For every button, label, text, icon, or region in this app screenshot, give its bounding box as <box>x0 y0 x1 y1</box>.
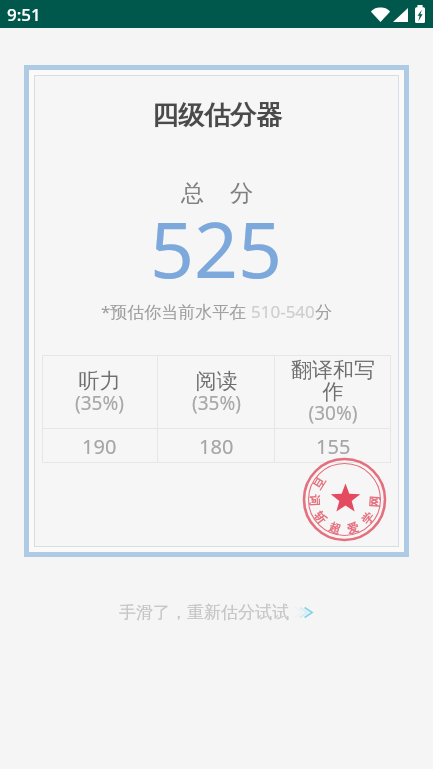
staticText: 分 <box>315 302 332 323</box>
staticText: 180 <box>199 433 234 460</box>
staticText: *预估你当前水平在 <box>101 300 251 323</box>
staticText: 155 <box>316 433 351 460</box>
staticText: 四级估分器 <box>152 99 282 132</box>
staticText: 手滑了，重新估分试试 <box>119 602 289 623</box>
staticText: 听力 (35%) <box>75 368 124 416</box>
button[interactable]: 手滑了，重新估分试试 <box>113 600 320 625</box>
staticText: 分 <box>230 179 253 208</box>
staticText: 9:51 <box>7 3 41 26</box>
staticText: 510-540 <box>251 300 315 323</box>
staticText: 翻译和写作 (30%) <box>290 357 376 426</box>
staticText: 525 <box>150 196 283 301</box>
other: Seal <box>298 453 388 543</box>
staticText: 190 <box>82 433 117 460</box>
staticText: 总 <box>181 179 204 208</box>
staticText: 阅读 (35%) <box>192 368 241 416</box>
